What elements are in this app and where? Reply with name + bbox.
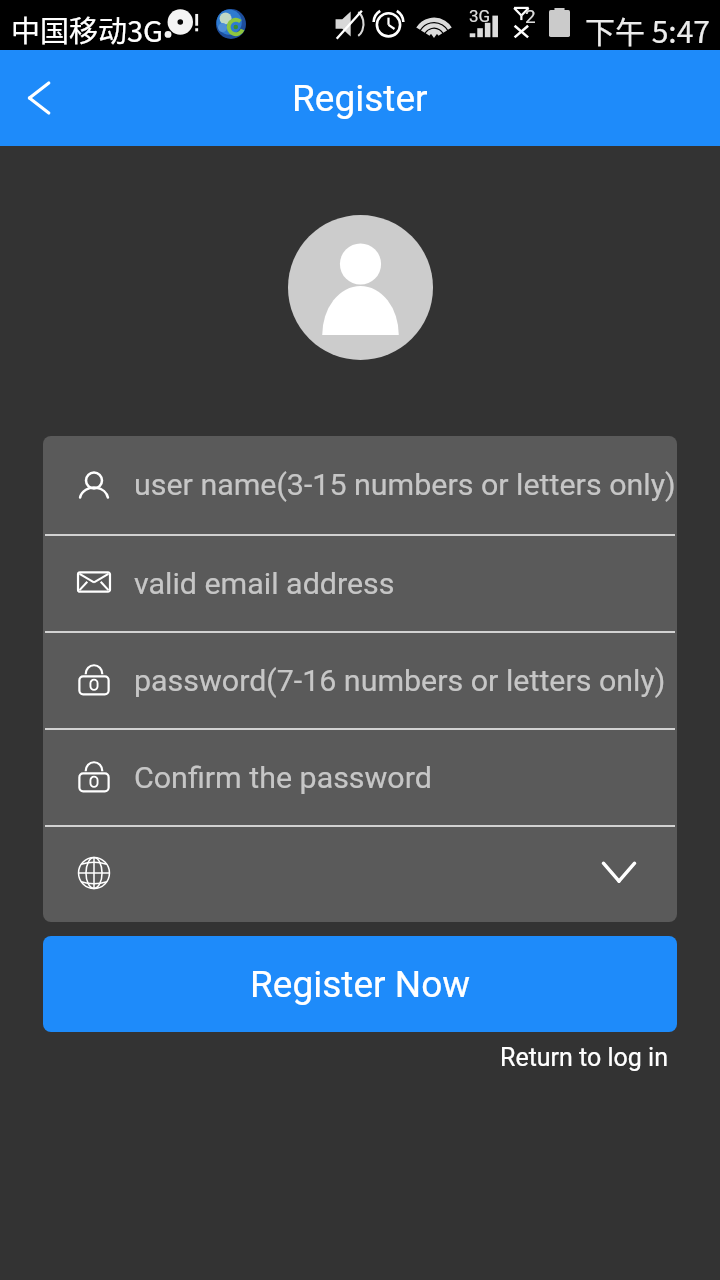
button[interactable]: user name(3-15 numbers or letters only) xyxy=(43,436,677,534)
staticText: Register xyxy=(292,77,428,120)
staticText: Confirm the password xyxy=(134,760,432,796)
staticText: 中国移动3G xyxy=(11,8,164,50)
staticText: password(7-16 numbers or letters only) xyxy=(134,663,666,699)
staticText: valid email address xyxy=(134,566,395,602)
button[interactable]: Select country code xyxy=(43,827,677,922)
staticText: 下午 5:47 xyxy=(585,8,711,51)
button[interactable]: Register Now xyxy=(43,936,677,1032)
button[interactable]: password(7-16 numbers or letters only) xyxy=(43,633,677,728)
staticText: Register Now xyxy=(250,963,471,1006)
button[interactable]: Profile photo xyxy=(288,215,433,360)
staticText: user name(3-15 numbers or letters only) xyxy=(134,467,676,503)
staticText: 3G xyxy=(469,6,491,26)
button[interactable]: valid email address xyxy=(43,536,677,631)
other: Select country code xyxy=(599,850,639,890)
button[interactable]: Back xyxy=(0,50,96,146)
button[interactable]: Return to log in xyxy=(448,1039,720,1076)
staticText: 2 xyxy=(525,5,536,27)
button[interactable]: Confirm the password xyxy=(43,730,677,825)
staticText: Return to log in xyxy=(500,1043,668,1072)
